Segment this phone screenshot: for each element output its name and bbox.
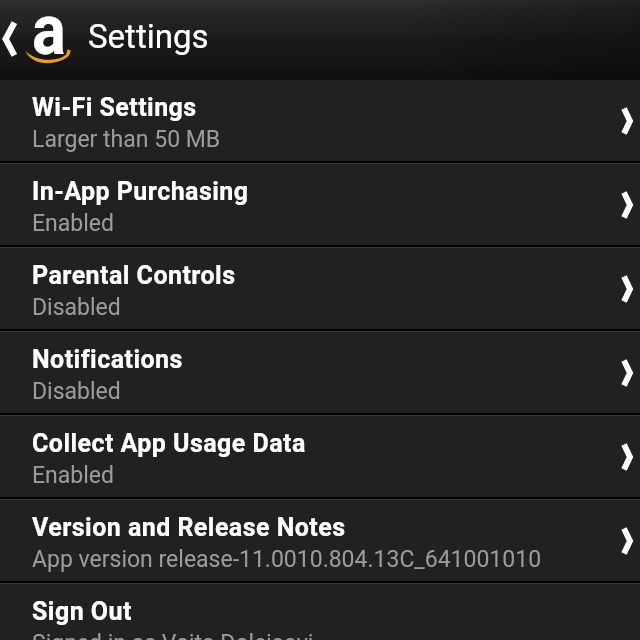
staticText: Collect App Usage Data	[32, 429, 306, 458]
staticText: Parental Controls	[32, 261, 236, 290]
staticText: Notifications	[32, 345, 183, 374]
staticText: Settings	[88, 17, 209, 56]
button[interactable]: Sign Out	[0, 584, 640, 640]
button[interactable]: Collect App Usage Data	[0, 416, 640, 497]
button[interactable]: Version and Release Notes	[0, 500, 640, 581]
button[interactable]: Parental Controls	[0, 248, 640, 329]
staticText: Signed in as Vojta Dolejsovi	[32, 630, 314, 640]
button[interactable]: Notifications	[0, 332, 640, 413]
staticText: Enabled	[32, 462, 114, 489]
button[interactable]: In-App Purchasing	[0, 164, 640, 245]
staticText: Enabled	[32, 210, 114, 237]
staticText: App version release-11.0010.804.13C_6410…	[32, 546, 542, 573]
staticText: Larger than 50 MB	[32, 126, 221, 153]
staticText: Wi-Fi Settings	[32, 93, 197, 122]
staticText: In-App Purchasing	[32, 177, 249, 206]
staticText: Disabled	[32, 294, 121, 321]
button[interactable]: Back	[0, 0, 20, 80]
button[interactable]: Wi-Fi Settings	[0, 80, 640, 161]
staticText: Disabled	[32, 378, 121, 405]
staticText: Version and Release Notes	[32, 513, 346, 542]
staticText: a	[32, 0, 66, 69]
staticText: Sign Out	[32, 597, 132, 626]
